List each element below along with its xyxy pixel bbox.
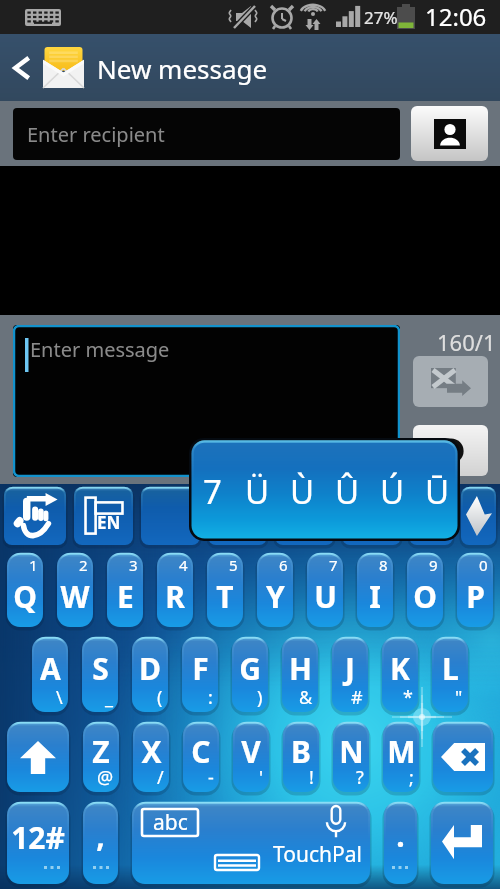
button[interactable]: W (57, 553, 93, 627)
staticText: H (289, 648, 312, 689)
button[interactable]: Space (132, 802, 370, 884)
staticText: Y (266, 576, 285, 617)
staticText: * (403, 685, 413, 710)
button[interactable]: Enter message (13, 325, 400, 477)
button[interactable]: H (282, 637, 318, 712)
staticText: ! (309, 765, 314, 790)
staticText: : (208, 685, 213, 710)
staticText: B (291, 731, 311, 772)
button[interactable]: X (133, 722, 169, 792)
button[interactable]: Shift (7, 722, 69, 792)
staticText: Q (13, 576, 37, 617)
button[interactable]: I (357, 553, 393, 627)
staticText: Ú (380, 469, 405, 514)
button[interactable] (208, 487, 267, 545)
button[interactable]: Convert to multimedia message (413, 356, 488, 407)
button[interactable]: Navigate up (0, 34, 44, 101)
staticText: O (413, 576, 437, 617)
staticText: M (387, 731, 416, 772)
staticText: D (139, 648, 161, 689)
button[interactable]: R (157, 553, 193, 627)
button[interactable]: L (432, 637, 468, 712)
staticText: 9 (429, 555, 438, 575)
button[interactable]: Delete (433, 722, 493, 792)
staticText: 2 (79, 555, 88, 575)
staticText: F (192, 648, 209, 689)
staticText: R (165, 576, 185, 617)
button[interactable]: E (107, 553, 143, 627)
button[interactable]: S (82, 637, 118, 712)
staticText: EN (97, 511, 121, 534)
button[interactable]: B (283, 722, 319, 792)
button[interactable]: 7 (189, 438, 460, 541)
button[interactable]: P (457, 553, 493, 627)
staticText: 4 (179, 555, 188, 575)
staticText: # (351, 685, 363, 710)
button[interactable]: D (132, 637, 168, 712)
staticText: - (208, 765, 214, 790)
staticText: 27% (364, 6, 398, 29)
button[interactable] (275, 487, 334, 545)
staticText: ( (157, 685, 163, 710)
button[interactable]: G (232, 637, 268, 712)
other: Enter (431, 802, 493, 884)
staticText: A (40, 648, 61, 689)
button[interactable]: Send message (413, 425, 488, 476)
staticText: 5 (229, 555, 238, 575)
staticText: 160/1 (437, 327, 496, 357)
staticText: S (92, 648, 109, 689)
button[interactable]: Enter (431, 802, 493, 884)
button[interactable]: Q (7, 553, 43, 627)
staticText: 6 (279, 555, 288, 575)
staticText: / (157, 765, 164, 790)
button[interactable]: M (383, 722, 419, 792)
staticText: J (345, 648, 355, 689)
staticText: \ (56, 685, 63, 710)
button[interactable]: F (182, 637, 218, 712)
button[interactable]: U (307, 553, 343, 627)
staticText: G (239, 648, 261, 689)
staticText: 1 (29, 555, 38, 575)
button[interactable]: A (32, 637, 68, 712)
button[interactable]: N (333, 722, 369, 792)
staticText: V (241, 731, 261, 772)
staticText: 12:06 (425, 0, 487, 33)
button[interactable]: . (384, 802, 417, 884)
button[interactable]: K (382, 637, 418, 712)
other: Change language (74, 487, 133, 545)
button[interactable]: O (407, 553, 443, 627)
button[interactable]: J (332, 637, 368, 712)
staticText: 12# (11, 817, 65, 858)
staticText: K (390, 648, 410, 689)
button[interactable]: C (183, 722, 219, 792)
button[interactable]: Y (257, 553, 293, 627)
staticText: " (455, 685, 463, 710)
button[interactable]: , (83, 802, 118, 884)
button[interactable]: 12# (7, 802, 69, 884)
button[interactable] (141, 487, 200, 545)
button[interactable]: Pick contact (411, 106, 488, 161)
staticText: 8 (379, 555, 388, 575)
staticText: U (314, 576, 337, 617)
button[interactable] (342, 487, 401, 545)
staticText: C (191, 731, 211, 772)
other: Delete (433, 722, 493, 792)
staticText: ; (409, 765, 414, 790)
staticText: Z (92, 731, 110, 772)
button[interactable]: V (233, 722, 269, 792)
button[interactable]: Swipe input (4, 487, 66, 545)
button[interactable]: Expand keyboard (461, 487, 496, 545)
button[interactable]: Z (83, 722, 119, 792)
staticText: TouchPal (273, 840, 362, 869)
other: Expand keyboard (461, 487, 496, 545)
staticText: 3 (129, 555, 138, 575)
button[interactable]: Enter recipient (13, 108, 400, 160)
staticText: & (299, 685, 313, 710)
staticText: N (339, 731, 364, 772)
button[interactable] (409, 487, 453, 545)
staticText: 7 (329, 555, 338, 575)
button[interactable]: Change language (74, 487, 133, 545)
staticText: 0 (479, 555, 488, 575)
button[interactable]: T (207, 553, 243, 627)
other: Shift (7, 722, 69, 792)
